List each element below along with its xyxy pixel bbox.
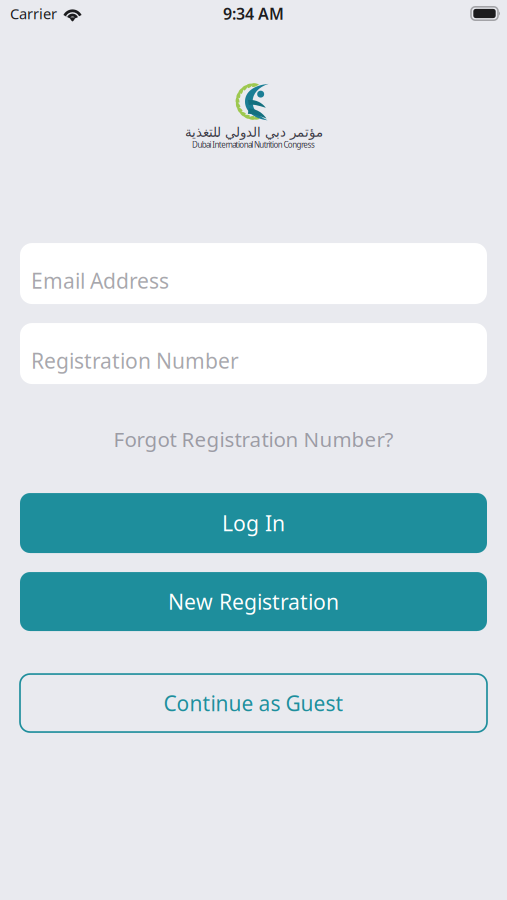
button[interactable]: New Registration bbox=[20, 572, 487, 631]
button[interactable]: Continue as Guest bbox=[20, 674, 487, 732]
staticText: New Registration bbox=[168, 587, 339, 616]
staticText: Forgot Registration Number? bbox=[113, 425, 393, 453]
staticText: Log In bbox=[222, 509, 285, 537]
staticText: Dubai International Nutrition Congress bbox=[192, 139, 315, 150]
button[interactable]: Log In bbox=[20, 493, 487, 553]
staticText: Email Address bbox=[31, 266, 169, 295]
button[interactable]: Registration Number bbox=[20, 323, 487, 384]
staticText: Registration Number bbox=[31, 346, 239, 375]
staticText: مؤتمر دبي الدولي للتغذية bbox=[184, 124, 322, 140]
staticText: Continue as Guest bbox=[163, 689, 343, 717]
button[interactable]: Forgot Registration Number? bbox=[0, 422, 507, 456]
staticText: Carrier bbox=[10, 4, 57, 23]
staticText: 9:34 AM bbox=[223, 3, 284, 24]
button[interactable]: Email Address bbox=[20, 243, 487, 304]
